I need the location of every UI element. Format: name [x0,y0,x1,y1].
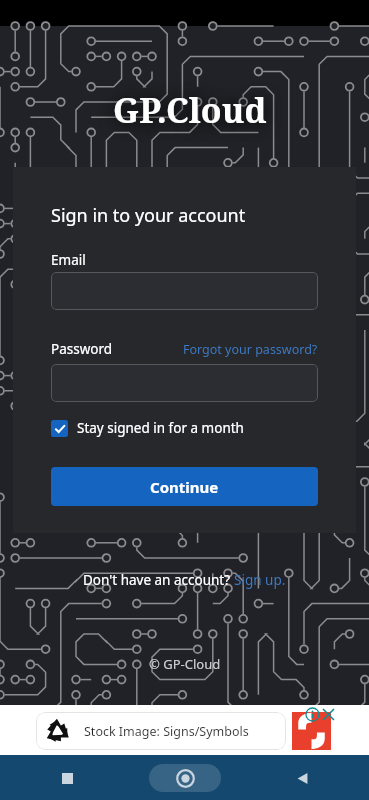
button[interactable]: Stock Image: Signs/Symbols [36,712,286,750]
staticText: Don't have an account? [83,571,234,589]
button[interactable]: Recents [48,759,86,797]
button[interactable]: Back [283,759,321,797]
staticText: Sign in to your account [51,203,246,228]
staticText: Stay signed in for a month [77,419,244,437]
staticText: © GP-Cloud [149,655,221,673]
staticText: Forgot your password? [183,341,318,358]
button[interactable]: Ad info [305,707,320,722]
button[interactable]: Sign up. [234,571,286,589]
button[interactable]: Advertisement [292,712,331,750]
button[interactable]: Continue [51,467,318,506]
staticText: GP.Cloud [113,87,267,133]
staticText: Sign up. [234,571,286,589]
button[interactable] [51,364,318,402]
button[interactable]: Home [149,764,221,792]
staticText: Password [51,340,113,358]
button[interactable] [51,272,318,310]
button[interactable]: Forgot your password? [183,341,318,358]
staticText: Continue [150,477,219,497]
button[interactable]: Close ad [322,708,335,721]
staticText: Email [51,251,86,269]
button[interactable]: Stay signed in for a month [51,419,244,437]
staticText: Stock Image: Signs/Symbols [84,723,249,740]
